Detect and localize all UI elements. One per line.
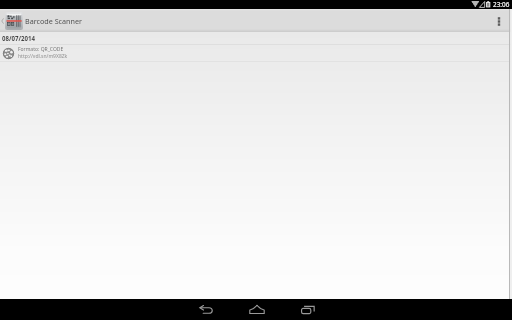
button[interactable]: Formato: QR_CODE <box>0 45 512 62</box>
staticText: 08/07/2014 <box>2 34 35 42</box>
staticText: http://vdl.sn/m9X8Zk <box>18 53 68 60</box>
staticText: Formato: QR_CODE <box>18 46 64 53</box>
button[interactable]: Back <box>180 299 231 320</box>
button[interactable]: Navigate up <box>0 12 25 30</box>
button[interactable]: More options <box>488 9 510 32</box>
button[interactable]: Recent apps <box>282 299 333 320</box>
staticText: 23:06 <box>493 0 510 9</box>
staticText: Barcode Scanner <box>25 16 83 26</box>
button[interactable]: Home <box>231 299 282 320</box>
